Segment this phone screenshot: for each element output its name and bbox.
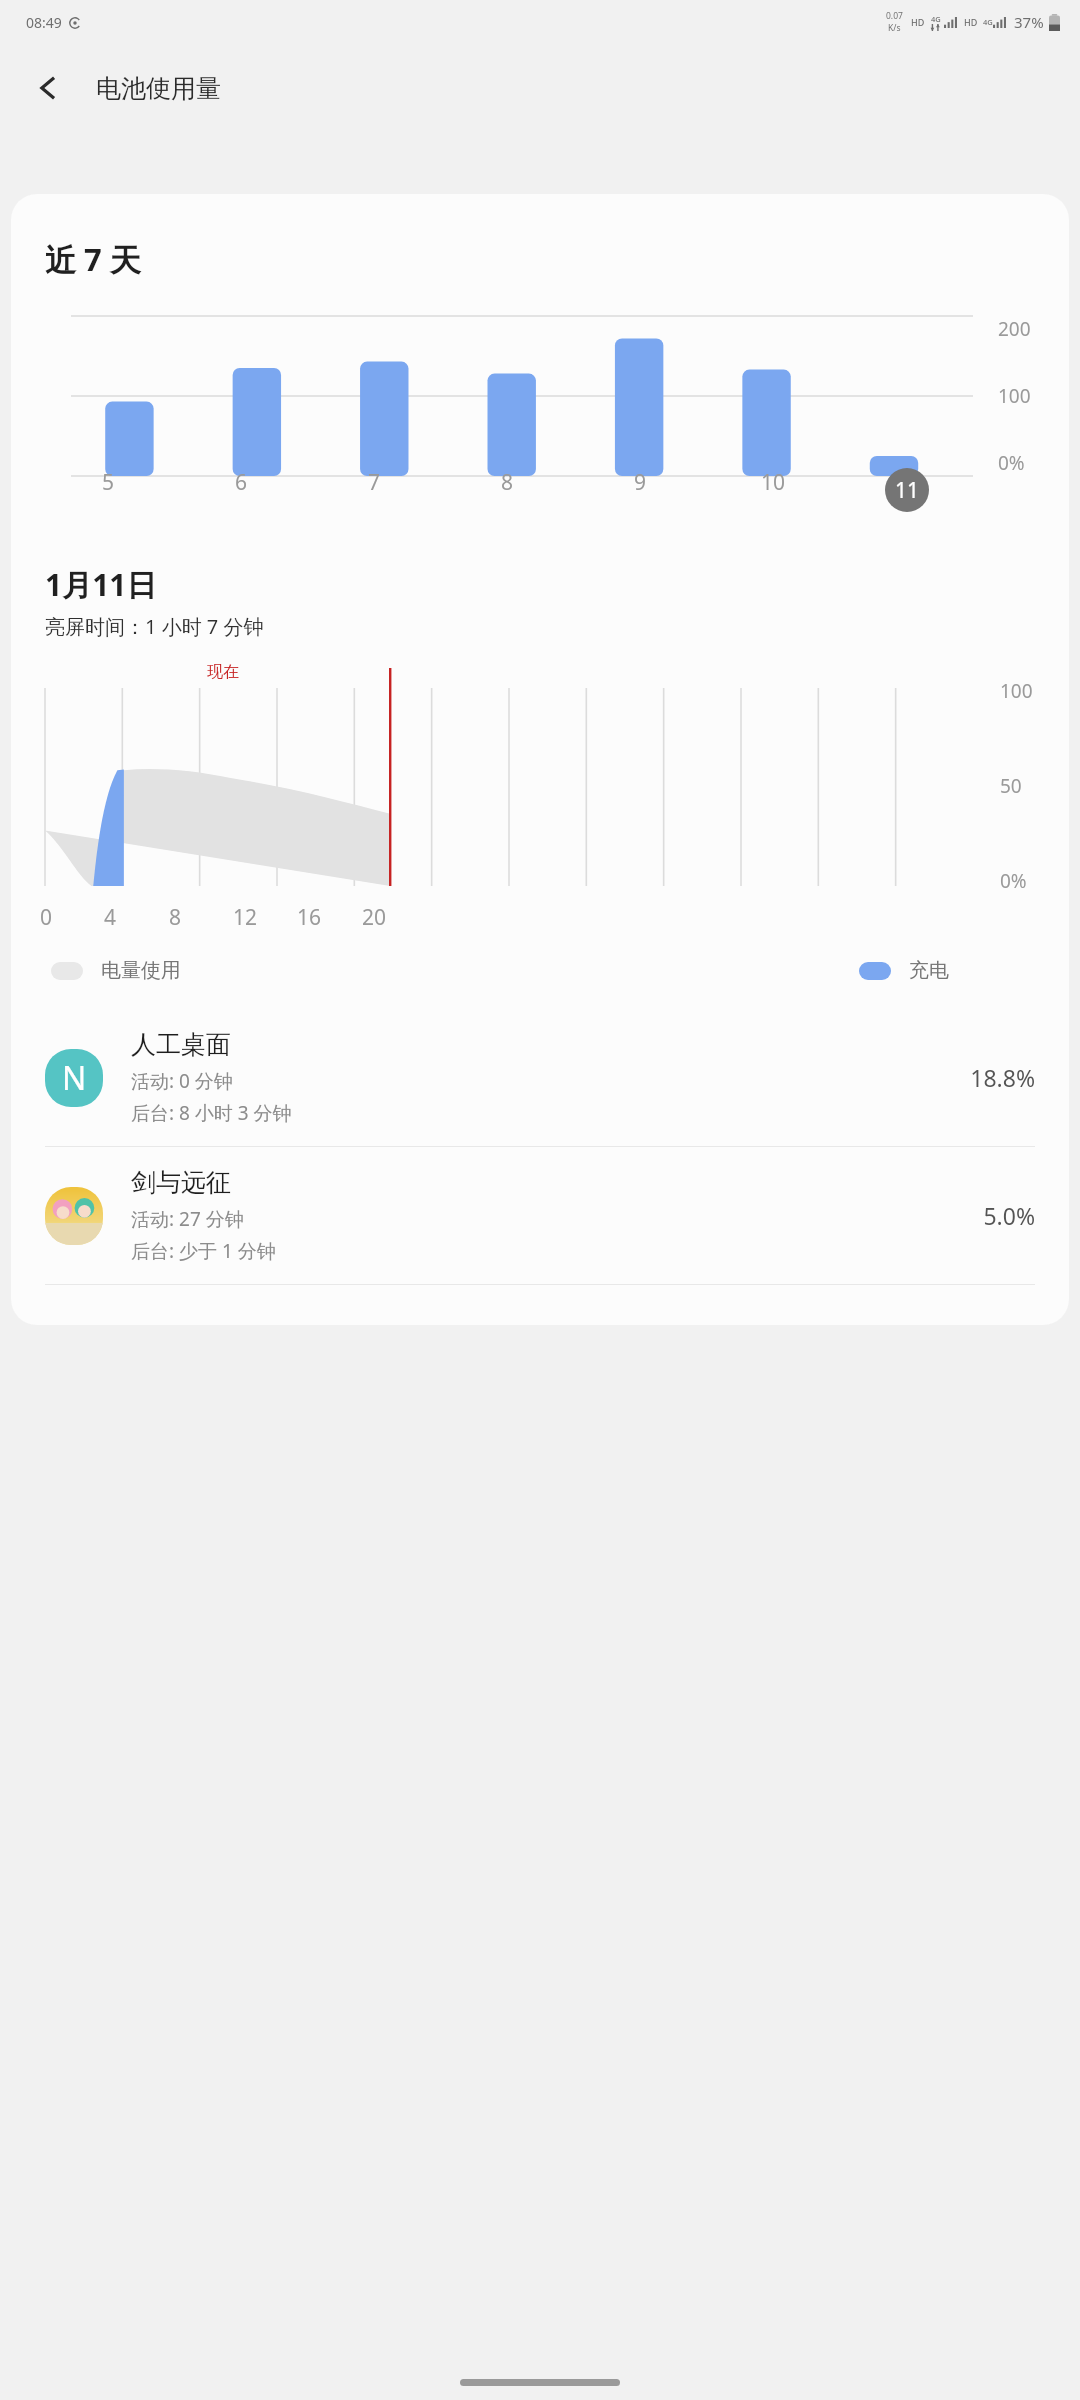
staticText: 0 [40,903,53,932]
staticText: 100 [1000,678,1033,704]
staticText: 08:49 [26,13,62,32]
staticText: 1月11日 [45,564,157,605]
staticText: 0% [1000,868,1027,894]
staticText: 8 [501,468,514,497]
staticText: 后台: 少于 1 分钟 [131,1238,276,1264]
button[interactable]: Back [22,62,74,114]
staticText: 4G [931,14,941,24]
staticText: 后台: 8 小时 3 分钟 [131,1100,292,1126]
staticText: 6 [235,468,248,497]
staticText: 10 [761,468,786,497]
staticText: K/s [888,22,901,34]
staticText: 50 [1000,773,1022,799]
staticText: 100 [998,383,1031,409]
button[interactable]: N [11,1009,1069,1146]
staticText: 亮屏时间：1 小时 7 分钟 [45,613,264,640]
staticText: 5.0% [983,1200,1035,1231]
staticText: 4 [104,903,117,932]
staticText: 近 7 天 [45,238,141,280]
staticText: 20 [362,903,387,932]
staticText: 9 [634,468,647,497]
staticText: 4G [983,17,993,27]
staticText: 37% [1014,12,1044,32]
staticText: HD [964,16,978,28]
staticText: 18.8% [970,1062,1035,1093]
staticText: 人工桌面 [131,1029,231,1060]
staticText: 电池使用量 [96,73,221,104]
staticText: 活动: 0 分钟 [131,1068,233,1094]
staticText: 0.07 [886,10,903,22]
staticText: 200 [998,316,1031,342]
staticText: 8 [169,903,182,932]
staticText: 12 [233,903,258,932]
staticText: 充电 [909,958,949,983]
staticText: 现在 [207,662,239,682]
staticText: N [62,1056,87,1100]
staticText: 活动: 27 分钟 [131,1206,244,1232]
staticText: 5 [102,468,115,497]
button[interactable]: 剑与远征 [11,1147,1069,1284]
staticText: 7 [368,468,381,497]
staticText: 16 [297,903,322,932]
staticText: 11 [895,476,920,505]
staticText: 电量使用 [101,958,181,983]
staticText: HD [911,16,925,28]
staticText: 0% [998,450,1025,476]
staticText: 剑与远征 [131,1167,231,1198]
